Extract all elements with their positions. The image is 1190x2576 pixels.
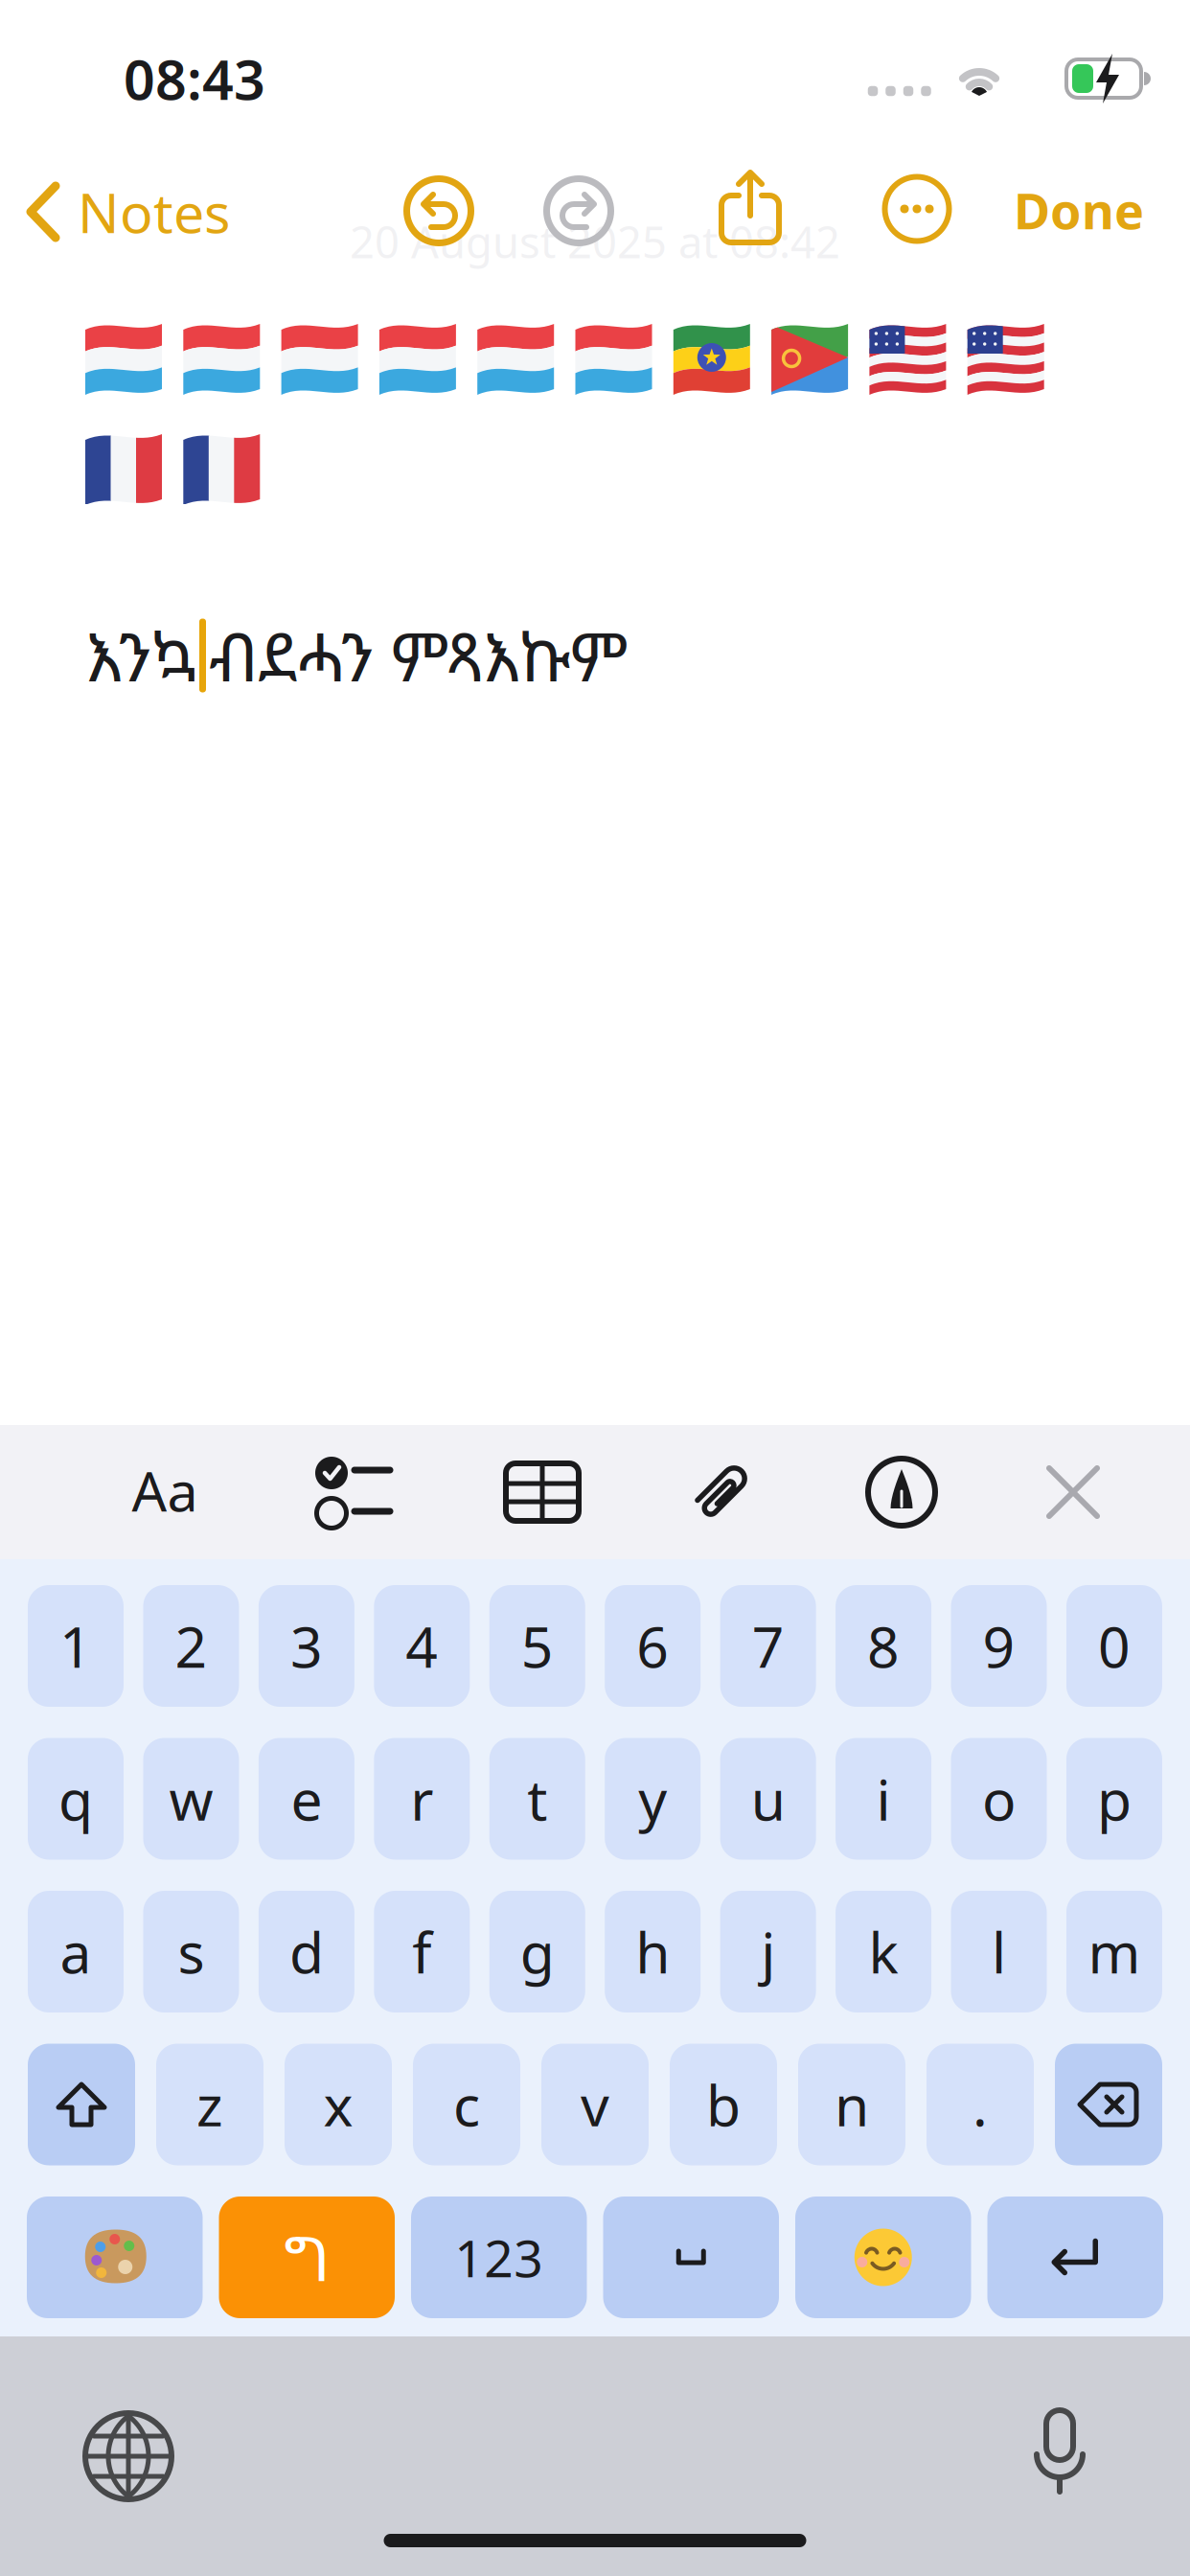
staticText: Done (1014, 177, 1144, 243)
button[interactable]: 9 (951, 1585, 1047, 1707)
button[interactable]: 3 (259, 1585, 354, 1707)
staticText: 8 (867, 1609, 900, 1683)
button[interactable]: 6 (605, 1585, 701, 1707)
staticText: 9 (983, 1609, 1015, 1683)
staticText: Aa (132, 1454, 198, 1527)
button[interactable]: p (1066, 1738, 1162, 1860)
staticText: 0 (1098, 1609, 1131, 1683)
staticText: 5 (521, 1609, 554, 1683)
button[interactable]: Delete (1055, 2044, 1162, 2165)
button[interactable]: Done (1014, 177, 1144, 243)
button[interactable]: Space (603, 2196, 779, 2318)
staticText: x (323, 2067, 353, 2142)
button[interactable]: 1 (28, 1585, 124, 1707)
staticText: h (635, 1914, 670, 1989)
staticText: y (638, 1761, 667, 1836)
button[interactable]: Checklist (315, 1455, 392, 1529)
button[interactable]: e (259, 1738, 354, 1860)
button[interactable]: o (951, 1738, 1047, 1860)
button[interactable]: w (143, 1738, 239, 1860)
staticText: 1 (59, 1609, 92, 1683)
button[interactable]: 8 (836, 1585, 931, 1707)
button[interactable]: i (836, 1738, 931, 1860)
staticText: እንኳ (85, 610, 196, 701)
staticText: r (410, 1761, 433, 1836)
button[interactable]: Undo (407, 179, 471, 243)
staticText: 4 (406, 1609, 438, 1683)
button[interactable]: Table (506, 1463, 579, 1521)
button[interactable]: Format (132, 1454, 198, 1527)
staticText: c (453, 2067, 480, 2142)
staticText: 20 August 2025 at 08:42 (350, 213, 840, 270)
button[interactable]: Dictate (1030, 2409, 1089, 2495)
staticText: q (58, 1761, 93, 1836)
button[interactable]: . (927, 2044, 1034, 2165)
button[interactable]: Redo (547, 179, 611, 243)
button[interactable]: Close (1046, 1465, 1100, 1519)
button[interactable]: r (374, 1738, 470, 1860)
button[interactable]: z (156, 2044, 263, 2165)
button[interactable]: 4 (374, 1585, 470, 1707)
button[interactable]: 2 (143, 1585, 239, 1707)
button[interactable]: Theme (27, 2196, 203, 2318)
button[interactable]: Next keyboard (85, 2413, 172, 2499)
button[interactable]: 7 (720, 1585, 816, 1707)
button[interactable]: y (605, 1738, 701, 1860)
button[interactable]: j (720, 1891, 816, 2012)
button[interactable]: k (836, 1891, 931, 2012)
staticText: 6 (636, 1609, 669, 1683)
button[interactable]: t (489, 1738, 585, 1860)
staticText: Notes (78, 175, 230, 248)
button[interactable]: d (259, 1891, 354, 2012)
staticText: 123 (454, 2223, 543, 2291)
button[interactable]: l (951, 1891, 1047, 2012)
staticText: 7 (752, 1609, 784, 1683)
staticText: 2 (175, 1609, 207, 1683)
staticText: m (1088, 1914, 1141, 1989)
staticText: n (835, 2067, 869, 2142)
button[interactable]: a (28, 1891, 124, 2012)
staticText: z (196, 2067, 223, 2142)
button[interactable]: 123 (411, 2196, 587, 2318)
staticText: p (1097, 1761, 1132, 1836)
staticText: v (581, 2067, 609, 2142)
staticText: i (876, 1761, 891, 1836)
button[interactable]: Share (720, 171, 781, 245)
button[interactable]: Emoji (795, 2196, 971, 2318)
staticText: l (992, 1914, 1006, 1989)
button[interactable]: m (1066, 1891, 1162, 2012)
button[interactable]: h (605, 1891, 701, 2012)
button[interactable]: g (489, 1891, 585, 2012)
staticText: . (973, 2067, 988, 2142)
staticText: e (291, 1761, 322, 1836)
button[interactable]: u (720, 1738, 816, 1860)
button[interactable]: Markup (868, 1459, 935, 1526)
button[interactable]: b (670, 2044, 777, 2165)
button[interactable]: x (285, 2044, 392, 2165)
button[interactable]: v (541, 2044, 649, 2165)
button[interactable]: Shift (28, 2044, 135, 2165)
button[interactable]: s (143, 1891, 239, 2012)
staticText: j (761, 1914, 775, 1989)
button[interactable]: f (374, 1891, 470, 2012)
staticText: t (527, 1761, 547, 1836)
staticText: u (751, 1761, 785, 1836)
staticText: s (178, 1914, 204, 1989)
button[interactable]: More (885, 177, 949, 241)
button[interactable]: 0 (1066, 1585, 1162, 1707)
staticText: 3 (290, 1609, 323, 1683)
staticText: b (706, 2067, 741, 2142)
button[interactable]: Notes (27, 175, 230, 248)
button[interactable]: 5 (489, 1585, 585, 1707)
staticText: k (869, 1914, 898, 1989)
button[interactable]: ግ (219, 2196, 395, 2318)
staticText: d (289, 1914, 324, 1989)
button[interactable]: n (798, 2044, 905, 2165)
staticText: ብደሓን ምጻእኩም (209, 610, 628, 701)
staticText: g (520, 1914, 555, 1989)
staticText: f (412, 1914, 431, 1989)
button[interactable]: q (28, 1738, 124, 1860)
button[interactable]: Return (987, 2196, 1163, 2318)
button[interactable]: c (413, 2044, 520, 2165)
button[interactable]: Attach (683, 1455, 758, 1529)
